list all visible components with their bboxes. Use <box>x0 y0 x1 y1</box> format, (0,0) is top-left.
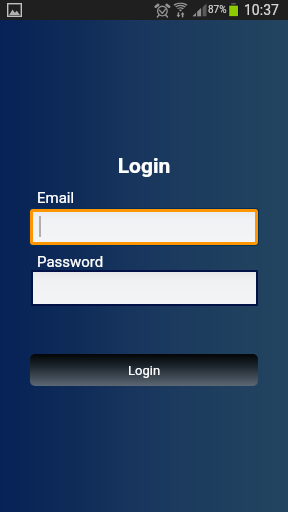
staticText: Login <box>128 363 161 378</box>
staticText: 10:37 <box>244 2 279 18</box>
other: Battery 87 percent <box>227 2 240 18</box>
staticText: Email <box>37 189 75 207</box>
staticText: 87% <box>208 4 227 16</box>
button[interactable] <box>33 272 256 304</box>
other: Mobile signal <box>192 3 207 17</box>
other: Alarm set <box>155 2 170 18</box>
button[interactable]: Login <box>30 354 258 386</box>
other: Screenshot captured <box>7 3 22 17</box>
staticText: Password <box>37 253 104 271</box>
staticText: Login <box>0 154 288 179</box>
button[interactable] <box>33 212 255 242</box>
other: Wi-Fi connected <box>173 1 189 19</box>
